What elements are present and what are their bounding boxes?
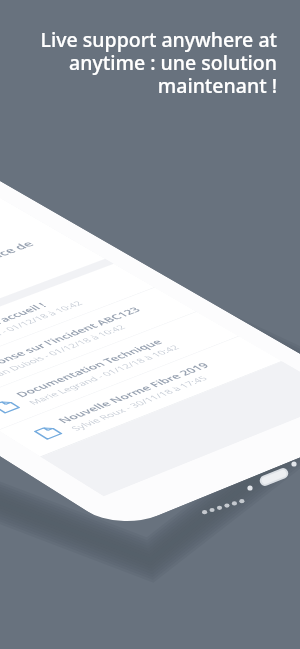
other: Device bottom (0, 0, 300, 649)
staticText: Documentation Technique (12, 337, 166, 399)
staticText: Jean Dubois - 01/12/18 à 10:42 (0, 323, 128, 381)
other: Document (29, 423, 67, 442)
staticText: Retour sur l'accueil ! (0, 300, 50, 348)
staticText: Paul Martin - 01/12/18 à 10:42 (0, 299, 85, 355)
other: Document (0, 397, 24, 416)
staticText: Réponse sur l'incident ABC123 (0, 305, 144, 374)
button[interactable]: Document (0, 312, 239, 430)
button[interactable]: Document (0, 288, 197, 404)
button[interactable]: Document (0, 336, 282, 457)
button[interactable]: Document (0, 264, 155, 379)
staticText: Sylvie Roux - 30/11/18 à 17:45 (67, 374, 211, 432)
staticText: Marie Legrand - 01/12/18 à 10:42 (25, 343, 182, 406)
staticText: Nouvelle Norme Fibre 2019 (54, 360, 213, 425)
staticText: Live support anywhere at anytime : une s… (18, 26, 277, 99)
staticText: Bienvenue sur votre espace de gestion (0, 228, 79, 323)
